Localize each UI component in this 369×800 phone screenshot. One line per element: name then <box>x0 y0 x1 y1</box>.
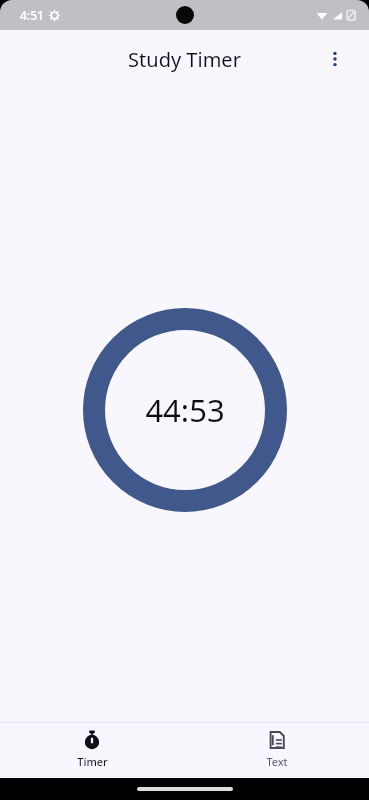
staticText: Text <box>266 754 288 769</box>
button[interactable]: Timer <box>0 723 184 778</box>
button[interactable]: More options <box>315 39 355 79</box>
staticText: 44:53 <box>145 389 225 431</box>
staticText: 4:51 <box>20 7 44 23</box>
staticText: Study Timer <box>128 46 241 73</box>
button[interactable]: Text <box>184 723 369 778</box>
staticText: Timer <box>77 754 108 769</box>
